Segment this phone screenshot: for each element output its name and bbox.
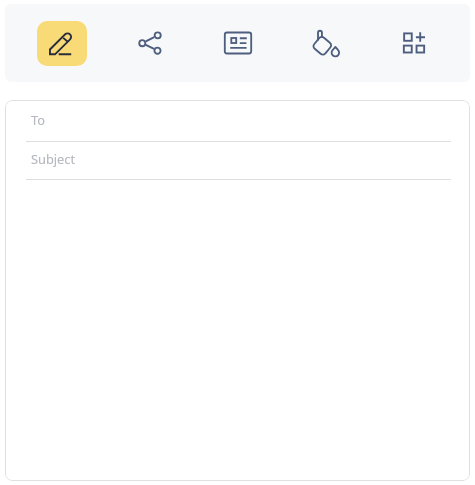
button[interactable]: Compose (37, 21, 87, 66)
staticText: To (31, 111, 45, 128)
staticText: Subject (31, 150, 76, 167)
button[interactable]: To (26, 101, 451, 142)
button[interactable]: Add widget (370, 4, 458, 82)
button[interactable]: To (5, 100, 470, 481)
button[interactable]: Subject (26, 142, 451, 180)
button[interactable]: Fill colour (282, 4, 370, 82)
button[interactable]: Contact card (194, 4, 282, 82)
button[interactable]: Share (106, 4, 194, 82)
